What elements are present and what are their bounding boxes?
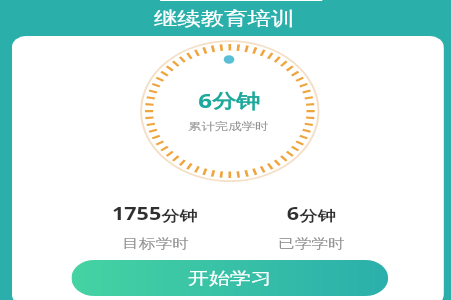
staticText: 分钟: [161, 207, 198, 225]
button[interactable]: 开始学习: [71, 260, 388, 296]
staticText: 目标学时: [122, 235, 189, 252]
staticText: 开始学习: [188, 268, 272, 289]
staticText: 累计完成学时: [188, 120, 269, 133]
staticText: 6分钟: [198, 88, 260, 114]
staticText: 1755: [112, 202, 161, 225]
staticText: 已学学时: [278, 235, 345, 252]
staticText: 继续教育培训: [154, 7, 294, 30]
staticText: 分钟: [299, 207, 336, 225]
staticText: 6: [287, 202, 299, 225]
